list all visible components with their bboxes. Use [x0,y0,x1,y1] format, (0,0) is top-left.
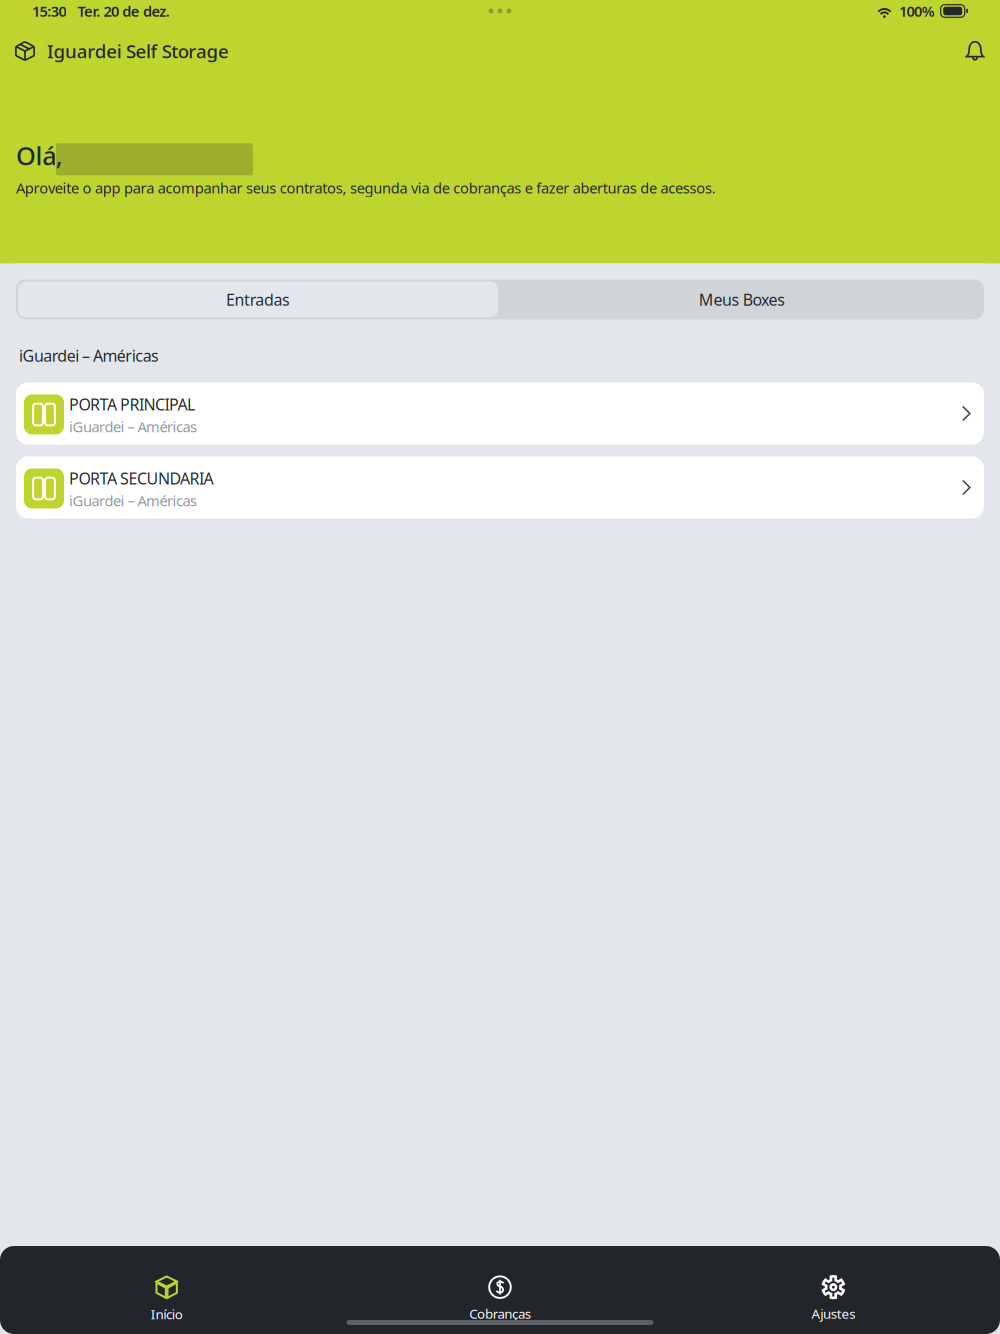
button[interactable]: Notificações [956,31,986,71]
staticText: iGuardei – Américas [69,491,197,510]
staticText: PORTA PRINCIPAL [69,394,195,415]
button[interactable]: Iguardei Self Storage [14,33,229,69]
staticText: Ajustes [811,1305,855,1322]
button[interactable]: Entradas [16,279,500,319]
staticText: Início [151,1305,183,1323]
button[interactable]: PORTA SECUNDARIA [16,456,984,518]
staticText: Cobranças [469,1305,531,1322]
button[interactable]: Meus Boxes [500,279,984,319]
staticText: Iguardei Self Storage [47,39,229,63]
staticText: iGuardei – Américas [69,417,197,436]
staticText: iGuardei – Américas [19,345,159,366]
staticText: PORTA SECUNDARIA [69,468,213,489]
button[interactable]: PORTA PRINCIPAL [16,382,984,444]
staticText: Entradas [226,289,290,310]
button[interactable]: Ajustes [667,1280,1000,1325]
staticText: Ter. 20 de dez. [77,1,170,21]
staticText: Aproveite o app para acompanhar seus con… [16,178,716,197]
staticText: 100% [899,1,935,21]
button[interactable]: Cobranças [333,1280,667,1325]
staticText: Olá, [16,139,63,172]
button[interactable]: Início [0,1280,333,1325]
staticText: 15:30 [32,1,66,21]
staticText: Meus Boxes [699,289,785,310]
